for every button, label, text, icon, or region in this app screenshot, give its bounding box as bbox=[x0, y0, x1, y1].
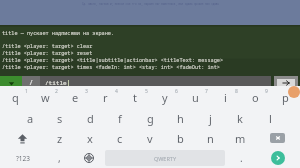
staticText: 5 bbox=[145, 88, 148, 95]
button[interactable]: z bbox=[45, 128, 75, 148]
staticText: j bbox=[209, 111, 212, 126]
button[interactable]: u bbox=[180, 87, 210, 108]
button[interactable]: g bbox=[135, 108, 165, 128]
staticText: k bbox=[237, 111, 243, 126]
staticText: 1 bbox=[25, 88, 28, 95]
staticText: p bbox=[282, 90, 289, 105]
staticText: /title <player: target> clear bbox=[2, 42, 93, 49]
button[interactable]: p bbox=[270, 87, 300, 108]
staticText: 4 bbox=[115, 88, 118, 95]
staticText: ?123 bbox=[16, 154, 30, 163]
button[interactable]: Send bbox=[277, 79, 295, 87]
button[interactable]: k bbox=[225, 108, 255, 128]
staticText: 9 bbox=[265, 88, 268, 95]
button[interactable]: v bbox=[135, 128, 165, 148]
staticText: 8 bbox=[235, 88, 238, 95]
staticText: u bbox=[192, 90, 199, 105]
staticText: /title <player: target> times <fadeIn: i… bbox=[2, 63, 220, 70]
button[interactable]: f bbox=[105, 108, 135, 128]
staticText: , bbox=[58, 151, 61, 165]
staticText: t bbox=[133, 90, 137, 105]
staticText: b bbox=[177, 131, 184, 146]
staticText: 3 bbox=[85, 88, 88, 95]
staticText: f bbox=[118, 111, 122, 126]
button[interactable]: n bbox=[195, 128, 225, 148]
staticText: 6 bbox=[175, 88, 178, 95]
staticText: QWERTY bbox=[154, 155, 177, 162]
button[interactable]: e bbox=[60, 87, 90, 108]
staticText: s bbox=[57, 111, 63, 126]
button[interactable]: r bbox=[90, 87, 120, 108]
button[interactable]: y bbox=[150, 87, 180, 108]
staticText: m bbox=[235, 131, 246, 146]
button[interactable]: a bbox=[15, 108, 45, 128]
button[interactable]: x bbox=[75, 128, 105, 148]
button[interactable]: w bbox=[30, 87, 60, 108]
button[interactable]: i bbox=[210, 87, 240, 108]
button[interactable]: / bbox=[22, 76, 40, 90]
staticText: Сд. авьпс, паглав м; незкол сол гго за, … bbox=[82, 2, 219, 6]
staticText: i bbox=[224, 90, 227, 105]
staticText: v bbox=[147, 131, 153, 146]
button[interactable]: t bbox=[120, 87, 150, 108]
button[interactable]: QWERTY bbox=[105, 150, 225, 166]
button[interactable]: j bbox=[195, 108, 225, 128]
button[interactable]: o bbox=[240, 87, 270, 108]
staticText: g bbox=[147, 111, 154, 126]
staticText: /title bbox=[45, 79, 67, 87]
staticText: h bbox=[177, 111, 184, 126]
staticText: e bbox=[72, 90, 79, 105]
button[interactable]: /title bbox=[40, 76, 271, 90]
button[interactable]: s bbox=[45, 108, 75, 128]
button[interactable]: Show commands bbox=[0, 76, 22, 90]
staticText: title — пускает надписями на экране. bbox=[2, 29, 115, 36]
button[interactable]: Change language bbox=[74, 148, 103, 168]
staticText: z bbox=[57, 131, 63, 146]
staticText: c bbox=[117, 131, 123, 146]
button[interactable]: d bbox=[75, 108, 105, 128]
staticText: q bbox=[12, 90, 19, 105]
button[interactable]: Shift bbox=[0, 128, 45, 148]
staticText: 2 bbox=[55, 88, 58, 95]
staticText: w bbox=[41, 90, 50, 105]
staticText: /title <player: target> <title|subtitle|… bbox=[2, 56, 223, 63]
button[interactable]: c bbox=[105, 128, 135, 148]
staticText: /title <player: target> reset bbox=[2, 49, 93, 56]
button[interactable]: , bbox=[45, 148, 74, 168]
staticText: / bbox=[29, 78, 34, 88]
button[interactable]: ?123 bbox=[0, 148, 45, 168]
staticText: r bbox=[103, 90, 108, 105]
button[interactable]: q bbox=[0, 87, 30, 108]
staticText: y bbox=[162, 90, 168, 105]
staticText: . bbox=[240, 151, 243, 165]
staticText: a bbox=[27, 111, 34, 126]
staticText: 7 bbox=[205, 88, 208, 95]
staticText: x bbox=[87, 131, 93, 146]
staticText: d bbox=[87, 111, 94, 126]
button[interactable]: h bbox=[165, 108, 195, 128]
button[interactable]: m bbox=[225, 128, 255, 148]
staticText: n bbox=[207, 131, 214, 146]
button[interactable]: b bbox=[165, 128, 195, 148]
button[interactable]: Enter bbox=[256, 148, 300, 168]
button[interactable]: Backspace bbox=[255, 128, 300, 148]
button[interactable]: . bbox=[227, 148, 256, 168]
button[interactable]: l bbox=[255, 108, 285, 128]
staticText: l bbox=[269, 111, 272, 126]
staticText: o bbox=[252, 90, 259, 105]
